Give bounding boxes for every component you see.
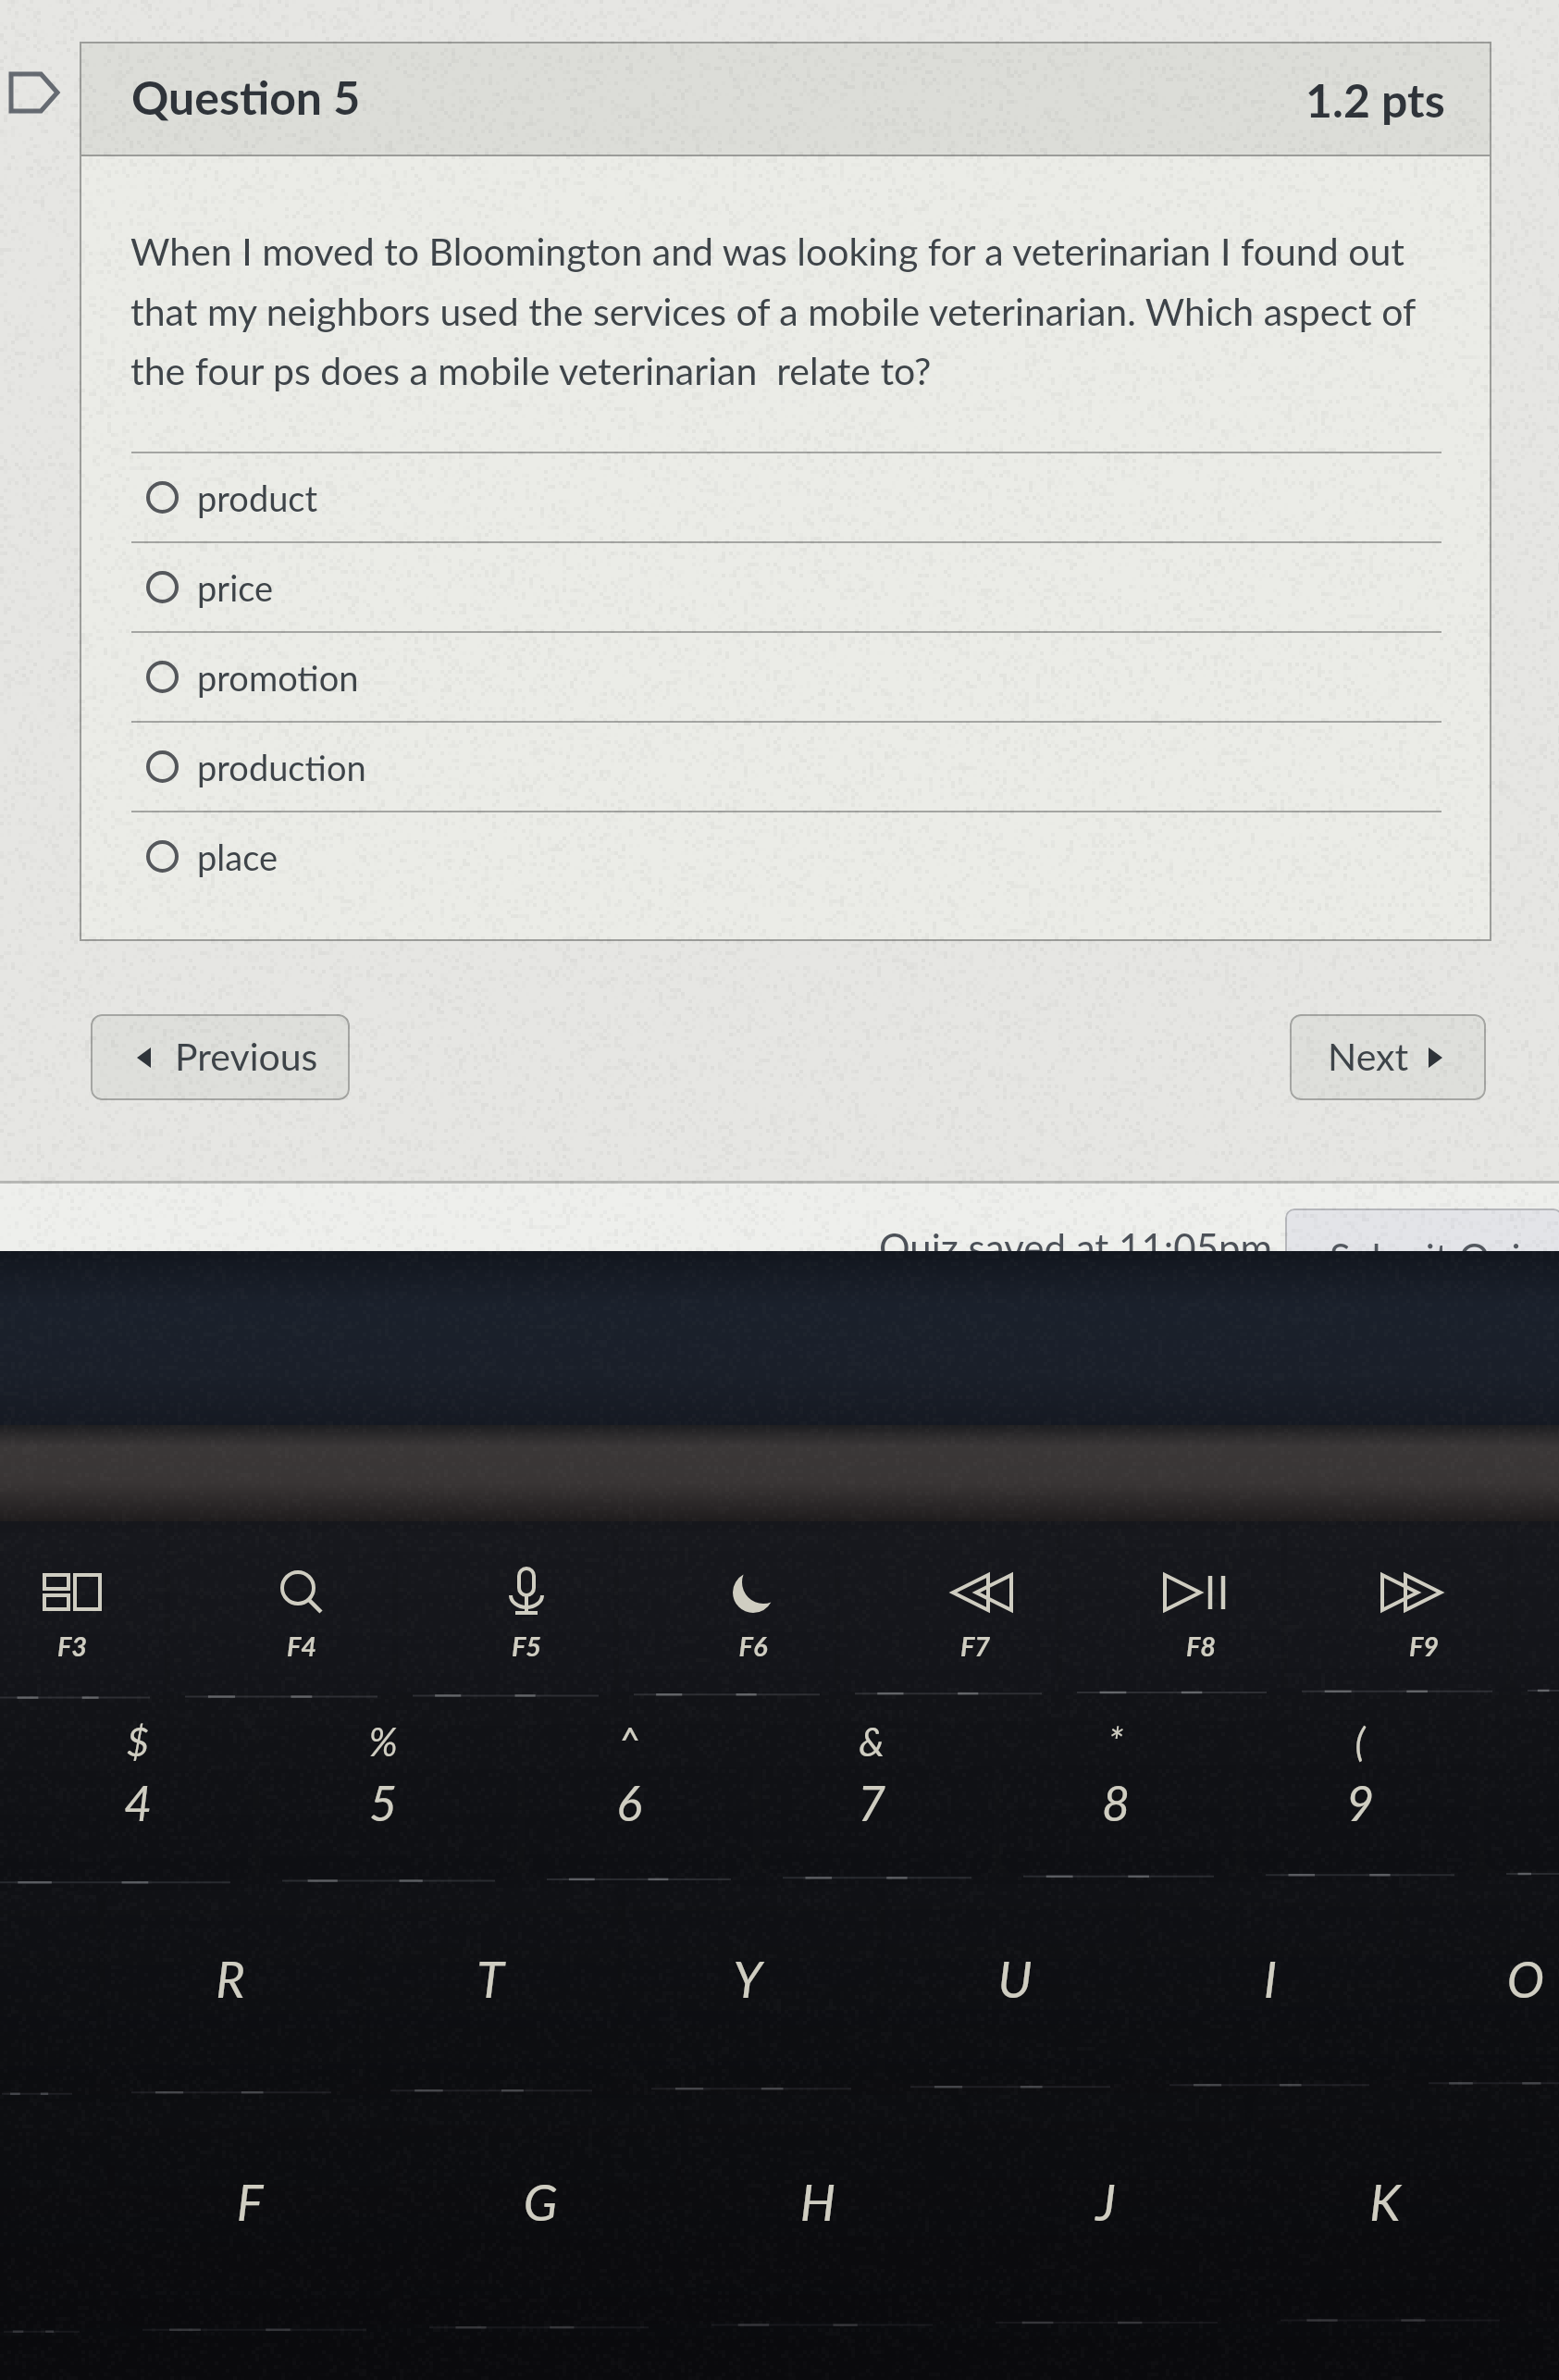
- staticText: F5: [425, 1630, 628, 1662]
- staticText: Y: [692, 1949, 803, 2009]
- staticText: production: [197, 746, 366, 788]
- button[interactable]: Flag question: [8, 71, 60, 114]
- button[interactable]: Play pause: [1099, 1541, 1303, 1680]
- button[interactable]: Fast forward: [1322, 1541, 1526, 1680]
- staticText: 5: [281, 1774, 485, 1831]
- button[interactable]: product: [80, 452, 1491, 541]
- button[interactable]: App switcher: [0, 1541, 174, 1680]
- button[interactable]: Microphone: [425, 1541, 628, 1680]
- staticText: $: [36, 1718, 240, 1765]
- staticText: promotion: [197, 656, 359, 699]
- staticText: place: [197, 836, 278, 878]
- button[interactable]: Submit Quiz: [1285, 1209, 1559, 1301]
- button[interactable]: Next: [1290, 1014, 1486, 1100]
- button[interactable]: Rewind: [873, 1541, 1077, 1680]
- button[interactable]: Previous: [91, 1014, 350, 1100]
- staticText: I: [1215, 1949, 1326, 2009]
- staticText: ^: [527, 1718, 731, 1765]
- staticText: Question 5: [131, 69, 361, 125]
- button[interactable]: promotion: [80, 631, 1491, 721]
- staticText: F8: [1099, 1630, 1303, 1662]
- button[interactable]: Search: [200, 1541, 403, 1680]
- button[interactable]: place: [80, 811, 1491, 900]
- staticText: 6: [527, 1774, 731, 1831]
- staticText: %: [281, 1718, 485, 1765]
- staticText: F: [194, 2172, 305, 2232]
- staticText: 7: [770, 1774, 973, 1831]
- staticText: F4: [200, 1630, 403, 1662]
- staticText: 8: [1014, 1774, 1218, 1831]
- staticText: Submit Quiz: [1330, 1234, 1539, 1281]
- button[interactable]: production: [80, 721, 1491, 811]
- button[interactable]: Do not disturb: [651, 1541, 855, 1680]
- staticText: F9: [1322, 1630, 1526, 1662]
- staticText: F7: [873, 1630, 1077, 1662]
- staticText: &: [770, 1718, 973, 1765]
- staticText: Next: [1328, 1034, 1409, 1079]
- staticText: When I moved to Bloomington and was look…: [130, 229, 1444, 392]
- staticText: U: [959, 1949, 1070, 2009]
- staticText: Quiz saved at 11:05pm: [879, 1224, 1273, 1271]
- staticText: *: [1014, 1718, 1218, 1765]
- staticText: R: [175, 1949, 286, 2009]
- staticText: (: [1258, 1718, 1462, 1765]
- staticText: 9: [1258, 1774, 1462, 1831]
- staticText: H: [762, 2172, 873, 2232]
- staticText: 4: [36, 1774, 240, 1831]
- staticText: O: [1470, 1949, 1559, 2009]
- staticText: T: [435, 1949, 546, 2009]
- staticText: price: [197, 566, 274, 609]
- staticText: 1.2 pts: [1305, 72, 1445, 128]
- button[interactable]: price: [80, 541, 1491, 631]
- staticText: Previous: [175, 1034, 318, 1079]
- staticText: K: [1330, 2172, 1441, 2232]
- staticText: J: [1050, 2172, 1161, 2232]
- staticText: G: [485, 2172, 596, 2232]
- staticText: F6: [651, 1630, 855, 1662]
- staticText: F3: [0, 1630, 174, 1662]
- staticText: product: [197, 477, 318, 519]
